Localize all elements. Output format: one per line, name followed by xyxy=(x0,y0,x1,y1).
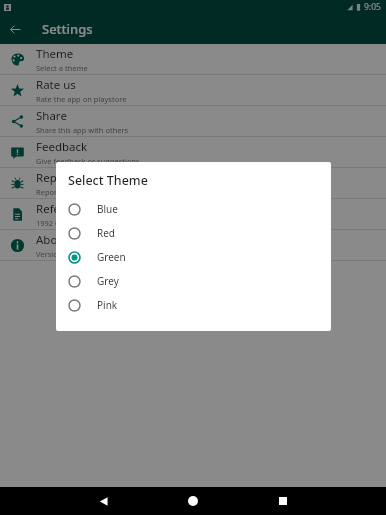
button[interactable] xyxy=(0,0,386,487)
staticText: Reference xyxy=(36,201,91,217)
button[interactable]: Back xyxy=(0,14,30,44)
button[interactable]: Feedback xyxy=(0,137,386,168)
staticText: Settings xyxy=(42,20,93,38)
button[interactable]: Report xyxy=(0,168,386,199)
button[interactable]: Pink xyxy=(56,293,331,317)
button[interactable]: About xyxy=(0,230,386,261)
staticText: Rate us xyxy=(36,77,76,93)
button[interactable]: Red xyxy=(56,221,331,245)
button[interactable]: Theme xyxy=(0,44,386,75)
staticText: Give feedback or suggestions xyxy=(36,156,140,166)
staticText: Select Theme xyxy=(68,172,148,189)
staticText: 9:05 xyxy=(364,1,381,13)
staticText: Version 5 xyxy=(36,249,69,259)
staticText: Share this app with others xyxy=(36,125,129,135)
staticText: Grey xyxy=(97,274,119,288)
staticText: 1992 Oreo xyxy=(36,218,73,228)
staticText: Select a theme xyxy=(36,63,88,73)
button[interactable]: Recents xyxy=(270,488,296,514)
button[interactable]: Blue xyxy=(56,197,331,221)
button[interactable]: Back xyxy=(90,488,116,514)
staticText: Green xyxy=(97,250,126,264)
button[interactable]: Home xyxy=(180,488,206,514)
staticText: Report xyxy=(36,170,73,186)
button[interactable]: Grey xyxy=(56,269,331,293)
staticText: Red xyxy=(97,226,116,240)
button[interactable]: Reference xyxy=(0,199,386,230)
staticText: About xyxy=(36,232,69,248)
button[interactable]: Share xyxy=(0,106,386,137)
staticText: Rate the app on playstore xyxy=(36,94,127,104)
staticText: Blue xyxy=(97,202,118,216)
staticText: Report a bug or mistake xyxy=(36,187,122,197)
staticText: Feedback xyxy=(36,139,88,155)
button[interactable]: Rate us xyxy=(0,75,386,106)
staticText: Pink xyxy=(97,298,118,312)
staticText: Theme xyxy=(36,46,74,62)
button[interactable]: Green xyxy=(56,245,331,269)
staticText: Share xyxy=(36,108,67,124)
